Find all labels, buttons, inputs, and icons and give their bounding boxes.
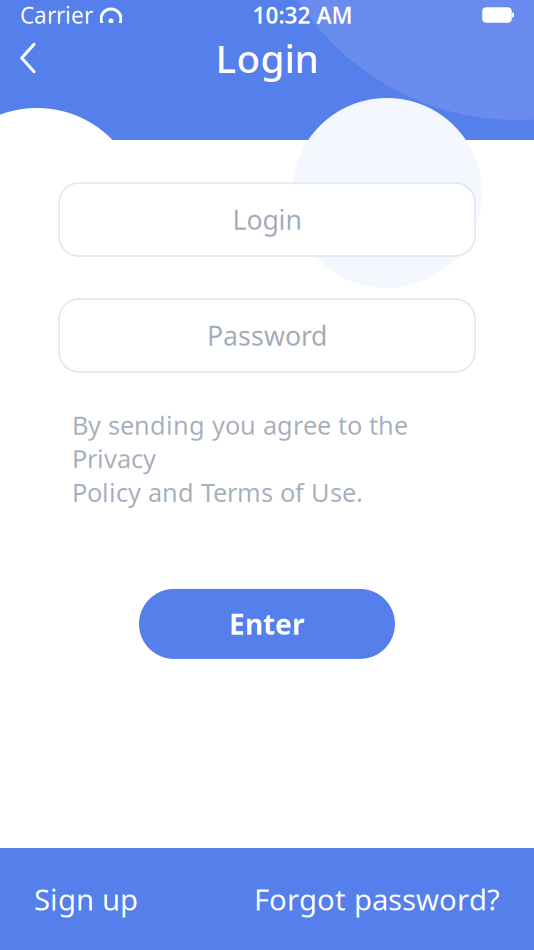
- staticText: Login: [232, 202, 301, 237]
- staticText: 10:32 AM: [252, 0, 352, 30]
- button[interactable]: Back: [0, 30, 56, 86]
- staticText: By sending you agree to the Privacy Poli…: [72, 408, 408, 509]
- staticText: Password: [207, 318, 327, 353]
- staticText: Sign up: [34, 879, 138, 918]
- button[interactable]: Enter: [139, 589, 395, 659]
- button[interactable]: Forgot password?: [246, 869, 508, 928]
- button[interactable]: Password: [59, 299, 475, 372]
- staticText: Carrier: [20, 0, 93, 30]
- staticText: Enter: [229, 605, 305, 642]
- button[interactable]: Sign up: [26, 869, 146, 928]
- staticText: Login: [215, 32, 318, 84]
- staticText: Forgot password?: [254, 879, 500, 918]
- button[interactable]: Login: [59, 183, 475, 256]
